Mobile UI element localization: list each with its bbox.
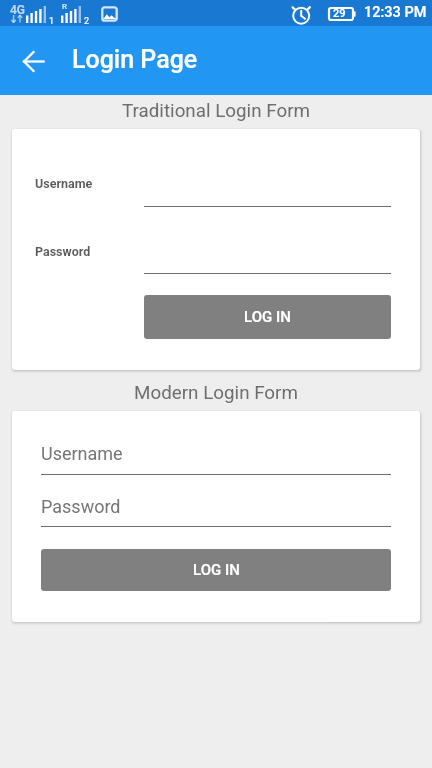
staticText: 2 [84,16,90,27]
button[interactable]: LOG IN [144,295,391,339]
staticText: 4G [10,3,25,17]
button[interactable]: LOG IN [41,549,391,591]
staticText: Username [41,443,123,464]
staticText: R [62,2,67,11]
staticText: LOG IN [244,308,291,326]
staticText: 29 [333,7,346,20]
button[interactable]: Back [13,41,53,81]
staticText: Login Page [72,45,198,74]
staticText: Username [35,176,93,191]
staticText: 12:33 PM [364,4,427,21]
staticText: Traditional Login Form [122,100,310,122]
staticText: Password [41,496,121,517]
staticText: Password [35,244,91,259]
staticText: 1 [49,16,55,27]
staticText: LOG IN [193,561,240,579]
staticText: Modern Login Form [134,382,298,404]
